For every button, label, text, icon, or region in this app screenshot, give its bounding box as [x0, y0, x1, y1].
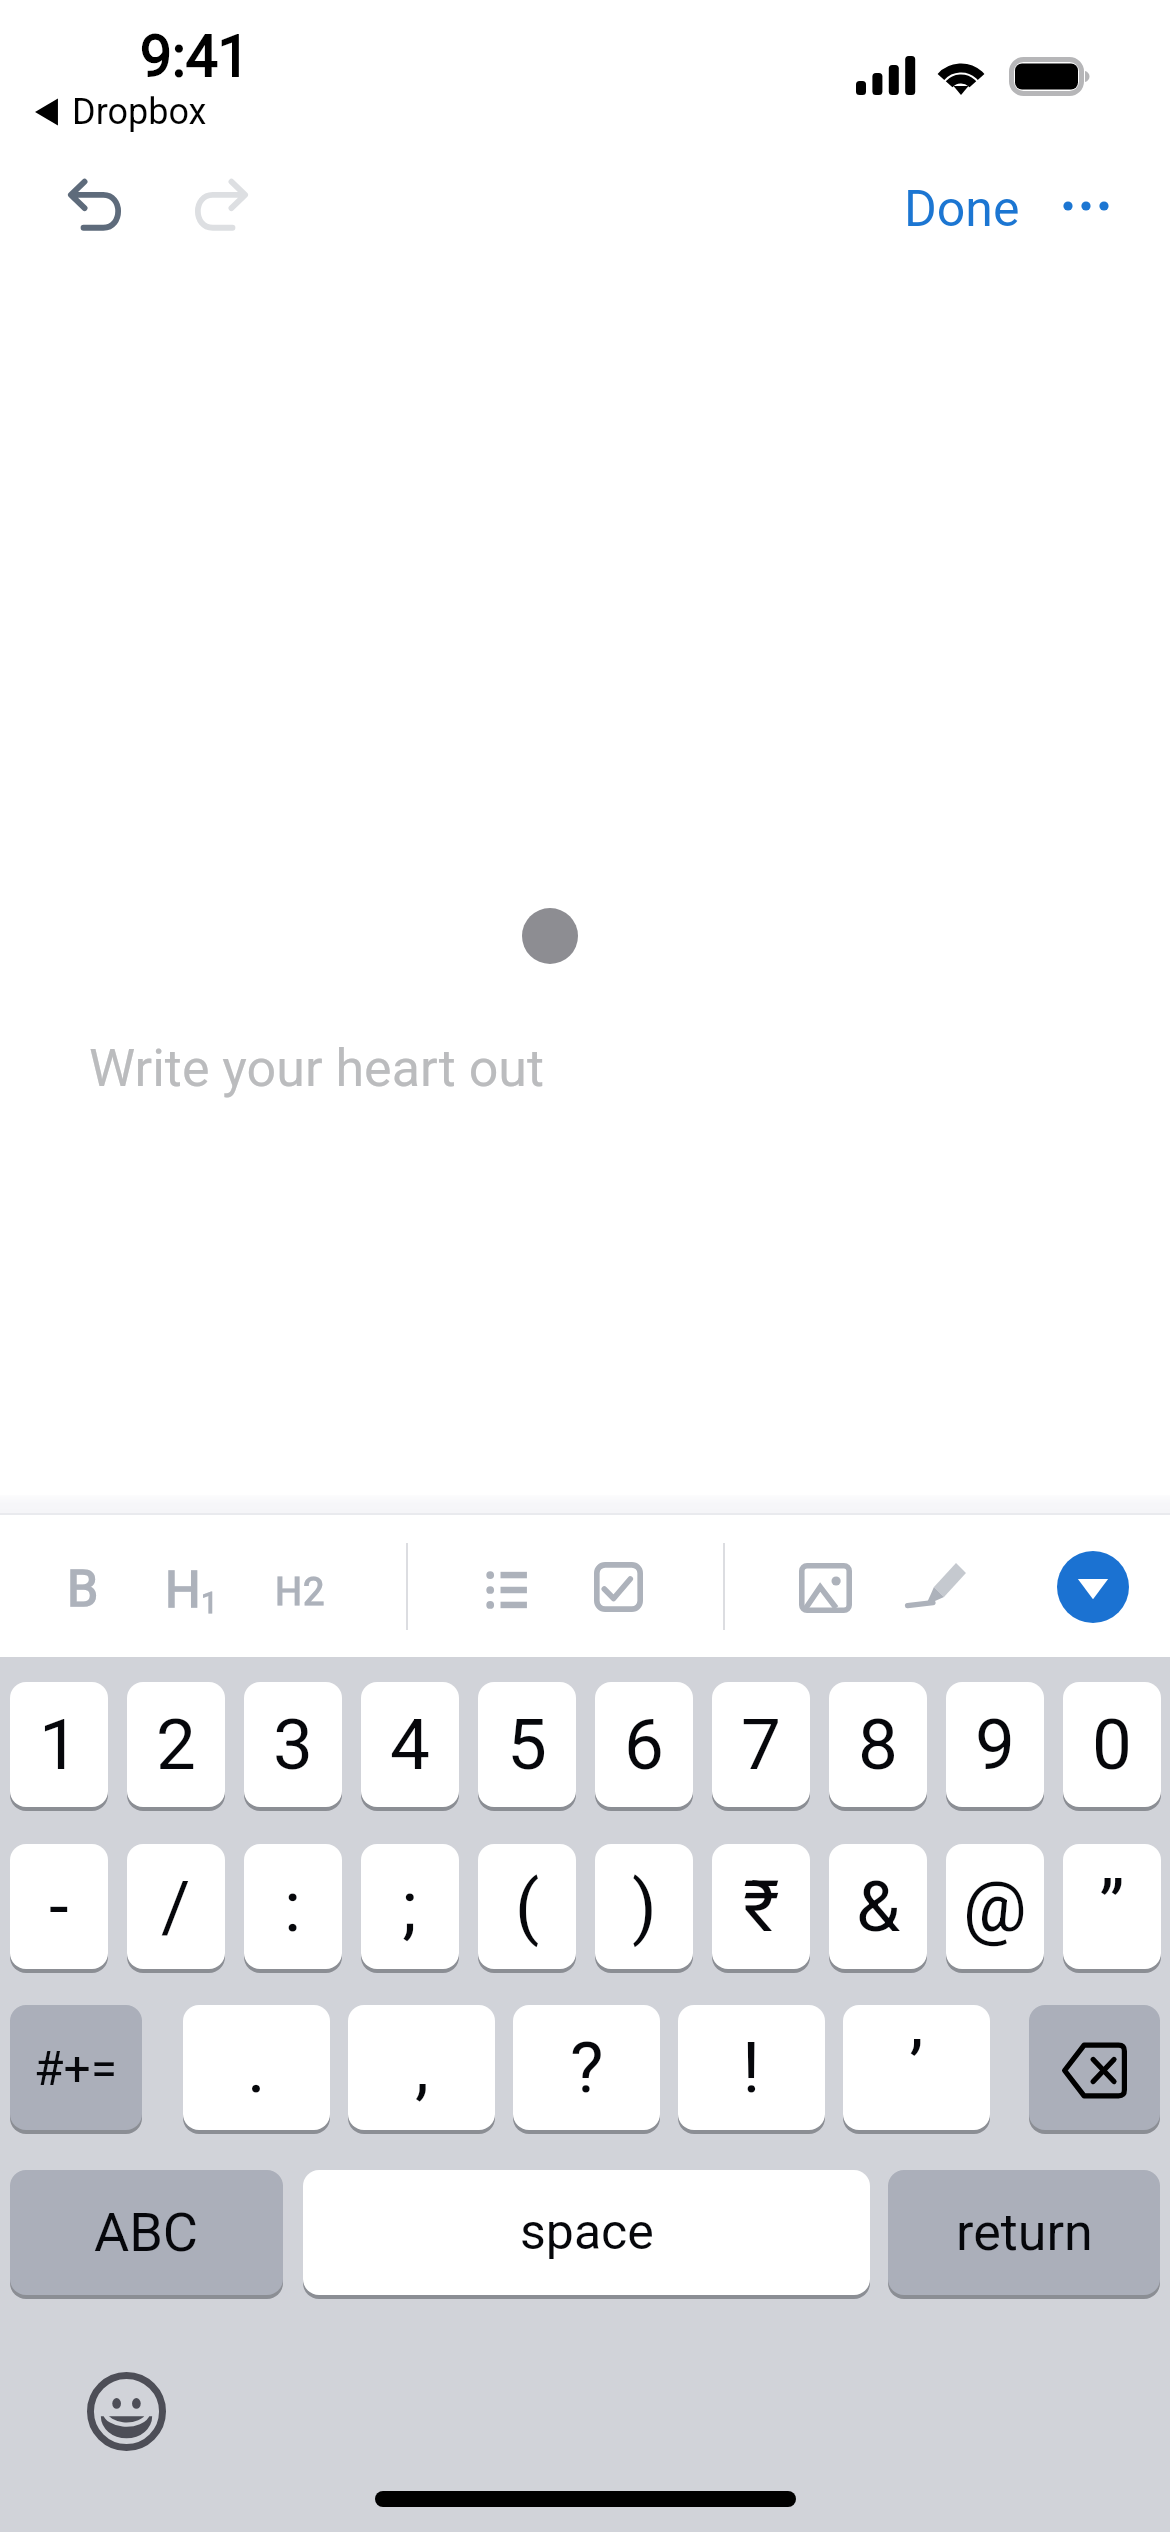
staticText: ! — [742, 2026, 761, 2109]
staticText: Write your heart out — [89, 1038, 545, 1099]
staticText: 2 — [303, 1570, 325, 1615]
staticText: : — [284, 1865, 302, 1948]
button[interactable]: Bulleted list — [466, 1551, 550, 1621]
button[interactable]: #+= — [10, 2005, 142, 2130]
staticText: ₹ — [743, 1865, 780, 1948]
button[interactable]: H — [244, 1547, 356, 1637]
staticText: ; — [402, 1865, 418, 1948]
staticText: & — [856, 1865, 901, 1948]
staticText: ( — [515, 1865, 540, 1948]
button[interactable]: Insert image — [787, 1549, 865, 1621]
staticText: ? — [570, 2026, 604, 2109]
button[interactable]: B — [38, 1544, 128, 1634]
button[interactable]: ; — [361, 1844, 459, 1969]
staticText: / — [161, 1865, 191, 1948]
button[interactable]: Hide keyboard — [1057, 1551, 1129, 1623]
button[interactable]: ) — [595, 1844, 693, 1969]
button[interactable]: 6 — [595, 1682, 693, 1807]
button[interactable]: ₹ — [712, 1844, 810, 1969]
button[interactable]: Emoji — [77, 2362, 176, 2461]
staticText: 9:41 — [140, 23, 250, 90]
staticText: 8 — [858, 1703, 898, 1786]
button[interactable]: Done — [882, 162, 1042, 257]
button[interactable]: Redo — [170, 155, 273, 258]
staticText: 1 — [201, 1585, 218, 1620]
button[interactable]: 0 — [1063, 1682, 1161, 1807]
button[interactable]: space — [303, 2170, 870, 2295]
staticText: 6 — [624, 1703, 664, 1786]
button[interactable]: ’ — [843, 2005, 990, 2130]
button[interactable]: H — [135, 1545, 247, 1635]
staticText: space — [520, 2203, 654, 2262]
staticText: H — [275, 1570, 303, 1615]
button[interactable]: ” — [1063, 1844, 1161, 1969]
button[interactable]: 3 — [244, 1682, 342, 1807]
button[interactable]: 5 — [478, 1682, 576, 1807]
staticText: Done — [904, 180, 1020, 239]
button[interactable]: 1 — [10, 1682, 108, 1807]
button[interactable]: . — [183, 2005, 330, 2130]
staticText: Dropbox — [72, 91, 207, 133]
button[interactable]: 8 — [829, 1682, 927, 1807]
staticText: B — [67, 1560, 99, 1619]
button[interactable]: - — [10, 1844, 108, 1969]
button[interactable]: @ — [946, 1844, 1044, 1969]
button[interactable]: 2 — [127, 1682, 225, 1807]
staticText: 3 — [273, 1703, 313, 1786]
staticText: 4 — [390, 1703, 430, 1786]
staticText: - — [49, 1865, 69, 1948]
staticText: @ — [963, 1865, 1027, 1948]
button[interactable]: Undo — [43, 155, 146, 258]
staticText: , — [415, 2026, 429, 2109]
button[interactable]: More options — [1036, 156, 1136, 256]
button[interactable]: , — [348, 2005, 495, 2130]
staticText: 2 — [156, 1703, 196, 1786]
button[interactable]: ? — [513, 2005, 660, 2130]
button[interactable]: Dropbox — [34, 91, 207, 133]
staticText: 7 — [741, 1703, 781, 1786]
staticText: 0 — [1092, 1703, 1132, 1786]
button[interactable]: : — [244, 1844, 342, 1969]
button[interactable]: / — [127, 1844, 225, 1969]
staticText: ) — [632, 1865, 657, 1948]
staticText: H — [165, 1561, 201, 1620]
button[interactable]: & — [829, 1844, 927, 1969]
button[interactable]: Checklist — [582, 1549, 654, 1621]
button[interactable]: Draw — [896, 1545, 982, 1625]
staticText: #+= — [34, 2040, 118, 2096]
button[interactable]: return — [888, 2170, 1160, 2295]
staticText: ’ — [909, 2026, 924, 2109]
staticText: return — [956, 2202, 1093, 2263]
button[interactable]: 9 — [946, 1682, 1044, 1807]
button[interactable]: ( — [478, 1844, 576, 1969]
staticText: 1 — [39, 1703, 79, 1786]
button[interactable]: ABC — [10, 2170, 283, 2295]
button[interactable]: 7 — [712, 1682, 810, 1807]
button[interactable]: 4 — [361, 1682, 459, 1807]
button[interactable]: ! — [678, 2005, 825, 2130]
button[interactable]: Backspace — [1029, 2005, 1160, 2130]
staticText: ” — [1099, 1865, 1125, 1948]
staticText: . — [247, 2026, 266, 2109]
staticText: ABC — [94, 2201, 199, 2264]
staticText: 5 — [507, 1703, 547, 1786]
staticText: 9 — [975, 1703, 1015, 1786]
